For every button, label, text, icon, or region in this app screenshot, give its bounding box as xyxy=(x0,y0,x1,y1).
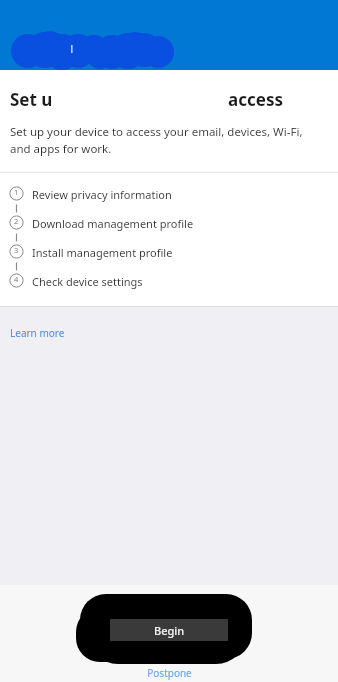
staticText: 1 xyxy=(14,187,19,197)
staticText: Begin xyxy=(154,623,185,638)
button[interactable]: 1 xyxy=(0,186,338,215)
staticText: Postpone xyxy=(147,666,192,680)
staticText: Set up your device to access your email,… xyxy=(10,124,332,156)
staticText: Install management profile xyxy=(32,245,173,260)
staticText: Download management profile xyxy=(32,216,194,231)
button[interactable]: Begin xyxy=(110,619,228,641)
staticText: Review privacy information xyxy=(32,187,172,202)
staticText: access xyxy=(228,88,283,111)
button[interactable]: 4 xyxy=(0,273,338,302)
button[interactable]: Postpone xyxy=(141,664,198,682)
staticText: Set up xyxy=(10,88,64,111)
button[interactable]: 2 xyxy=(0,215,338,244)
button[interactable]: 3 xyxy=(0,244,338,273)
staticText: 4 xyxy=(14,274,19,284)
staticText: 2 xyxy=(14,216,19,226)
button[interactable]: Learn more xyxy=(6,324,69,342)
staticText: 3 xyxy=(14,245,19,255)
staticText: Check device settings xyxy=(32,274,143,289)
staticText: Learn more xyxy=(10,326,65,340)
